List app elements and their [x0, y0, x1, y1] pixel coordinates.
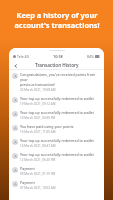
staticText: 10:58	[53, 54, 63, 59]
button[interactable]: Your top-up successfully redeemed to wal…	[9, 136, 104, 150]
button[interactable]: Your top-up successfully redeemed to wal…	[9, 108, 104, 122]
staticText: 12 March 2021, 06:20 PM	[20, 158, 56, 162]
staticText: 09 March 2021, 01:15 PM	[20, 172, 56, 176]
button[interactable]: Back	[11, 61, 20, 70]
staticText: 07 March 2021, 10:02 AM	[20, 186, 56, 190]
staticText: Tele 4G	[17, 54, 30, 59]
staticText: Your top-up successfully redeemed to wal…	[20, 96, 94, 101]
staticText: You have paid using your points	[20, 124, 74, 129]
staticText: Transaction History	[35, 62, 79, 68]
button[interactable]: Congratulations, you've received points …	[9, 70, 104, 94]
button[interactable]: Your top-up successfully redeemed to wal…	[9, 94, 104, 108]
button[interactable]: Your top-up successfully redeemed to wal…	[9, 150, 104, 164]
staticText: 84%	[87, 54, 94, 59]
button[interactable]: Payment	[9, 164, 104, 178]
button[interactable]: Payment	[9, 178, 104, 192]
staticText: Payment	[20, 180, 35, 185]
button[interactable]: You have paid using your points	[9, 122, 104, 136]
staticText: Payment	[20, 166, 35, 171]
staticText: Your top-up successfully redeemed to wal…	[20, 138, 94, 143]
staticText: 19 March 2021, 09:12 AM	[20, 102, 56, 106]
staticText: Your top-up successfully redeemed to wal…	[20, 152, 94, 157]
staticText: 22 March 2021, 10:58 AM	[20, 88, 56, 92]
staticText: 14 March 2021, 08:47 AM	[20, 144, 56, 148]
staticText: Keep a history of your account's transac…	[14, 10, 100, 30]
staticText: Your top-up successfully redeemed to wal…	[20, 110, 94, 115]
staticText: Congratulations, you've received points …	[20, 72, 101, 87]
staticText: 18 March 2021, 04:30 PM	[20, 116, 56, 120]
staticText: 16 March 2021, 11:05 AM	[20, 130, 56, 134]
